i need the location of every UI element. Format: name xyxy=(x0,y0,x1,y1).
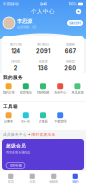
staticText: 136 xyxy=(38,65,48,72)
button[interactable]: 收货地址 xyxy=(17,83,34,94)
staticText: 工具箱 xyxy=(3,103,18,109)
staticText: 首页 xyxy=(8,179,14,184)
staticText: 计算器 xyxy=(38,119,47,123)
button[interactable]: 下载管理 xyxy=(52,112,69,123)
staticText: 累计积分 xyxy=(37,42,49,46)
staticText: 安全中心 xyxy=(54,90,66,94)
staticText: 编辑资料 xyxy=(69,21,81,25)
staticText: 我的收藏 xyxy=(37,90,49,94)
staticText: 扫一扫 xyxy=(21,119,30,123)
button[interactable]: 累计积分 xyxy=(29,42,57,55)
staticText: 中国移动 xyxy=(3,2,19,6)
staticText: 会员等级：V3 xyxy=(17,25,36,29)
staticText: 累计订单 xyxy=(10,42,22,46)
button[interactable]: 意见反馈 xyxy=(69,83,86,94)
button[interactable]: 计算器 xyxy=(34,112,52,123)
button[interactable]: 分类 xyxy=(21,174,43,184)
button[interactable]: 优惠券 xyxy=(57,42,84,55)
button[interactable]: 我的 xyxy=(64,174,86,184)
staticText: 立即开通 xyxy=(9,163,21,168)
staticText: 9:41 xyxy=(40,2,47,6)
staticText: 意见反馈 xyxy=(71,90,83,94)
staticText: 购物车 xyxy=(49,179,58,184)
staticText: 记事本 xyxy=(4,119,13,123)
staticText: 分类 xyxy=(29,179,35,184)
staticText: 124 xyxy=(11,48,20,55)
button[interactable]: Settings xyxy=(75,8,82,15)
staticText: 下载管理 xyxy=(54,119,66,123)
button[interactable]: 我的订单 xyxy=(0,83,17,94)
staticText: 我的 xyxy=(72,179,78,184)
button[interactable]: 购物车 xyxy=(43,174,64,184)
staticText: 优惠券 xyxy=(66,42,75,46)
button[interactable]: 立即开通 xyxy=(6,162,25,168)
staticText: 待付款 xyxy=(11,59,20,63)
button[interactable]: 记事本 xyxy=(0,112,17,123)
staticText: 2091 xyxy=(36,48,50,55)
button[interactable]: 待付款 xyxy=(2,59,29,72)
staticText: 2 xyxy=(14,65,18,72)
button[interactable]: 我的收藏 xyxy=(34,83,52,94)
button[interactable]: 待收货 xyxy=(57,59,84,72)
button[interactable]: 编辑资料 xyxy=(67,20,83,26)
staticText: 李思源 xyxy=(17,18,32,24)
staticText: 260 xyxy=(64,65,76,72)
staticText: 个人中心 xyxy=(31,8,55,15)
button[interactable]: 首页 xyxy=(0,174,21,184)
staticText: 收货地址 xyxy=(20,90,32,94)
staticText: 限时优惠活动 xyxy=(32,132,56,137)
button[interactable]: 待发货 xyxy=(29,59,57,72)
button[interactable]: 安全中心 xyxy=(52,83,69,94)
staticText: 我的服务 xyxy=(3,74,23,80)
staticText: 超级会员 xyxy=(6,143,26,149)
staticText: 667 xyxy=(65,48,76,55)
staticText: 成员服务中心 xyxy=(3,132,27,137)
staticText: 待收货 xyxy=(66,59,75,63)
button[interactable]: 扫一扫 xyxy=(17,112,34,123)
staticText: 100% xyxy=(68,2,77,6)
staticText: 待发货 xyxy=(38,59,47,63)
staticText: 我的订单 xyxy=(3,90,15,94)
button[interactable]: 累计订单 xyxy=(2,42,29,55)
staticText: 尊享多重专属权益 xyxy=(6,150,30,154)
